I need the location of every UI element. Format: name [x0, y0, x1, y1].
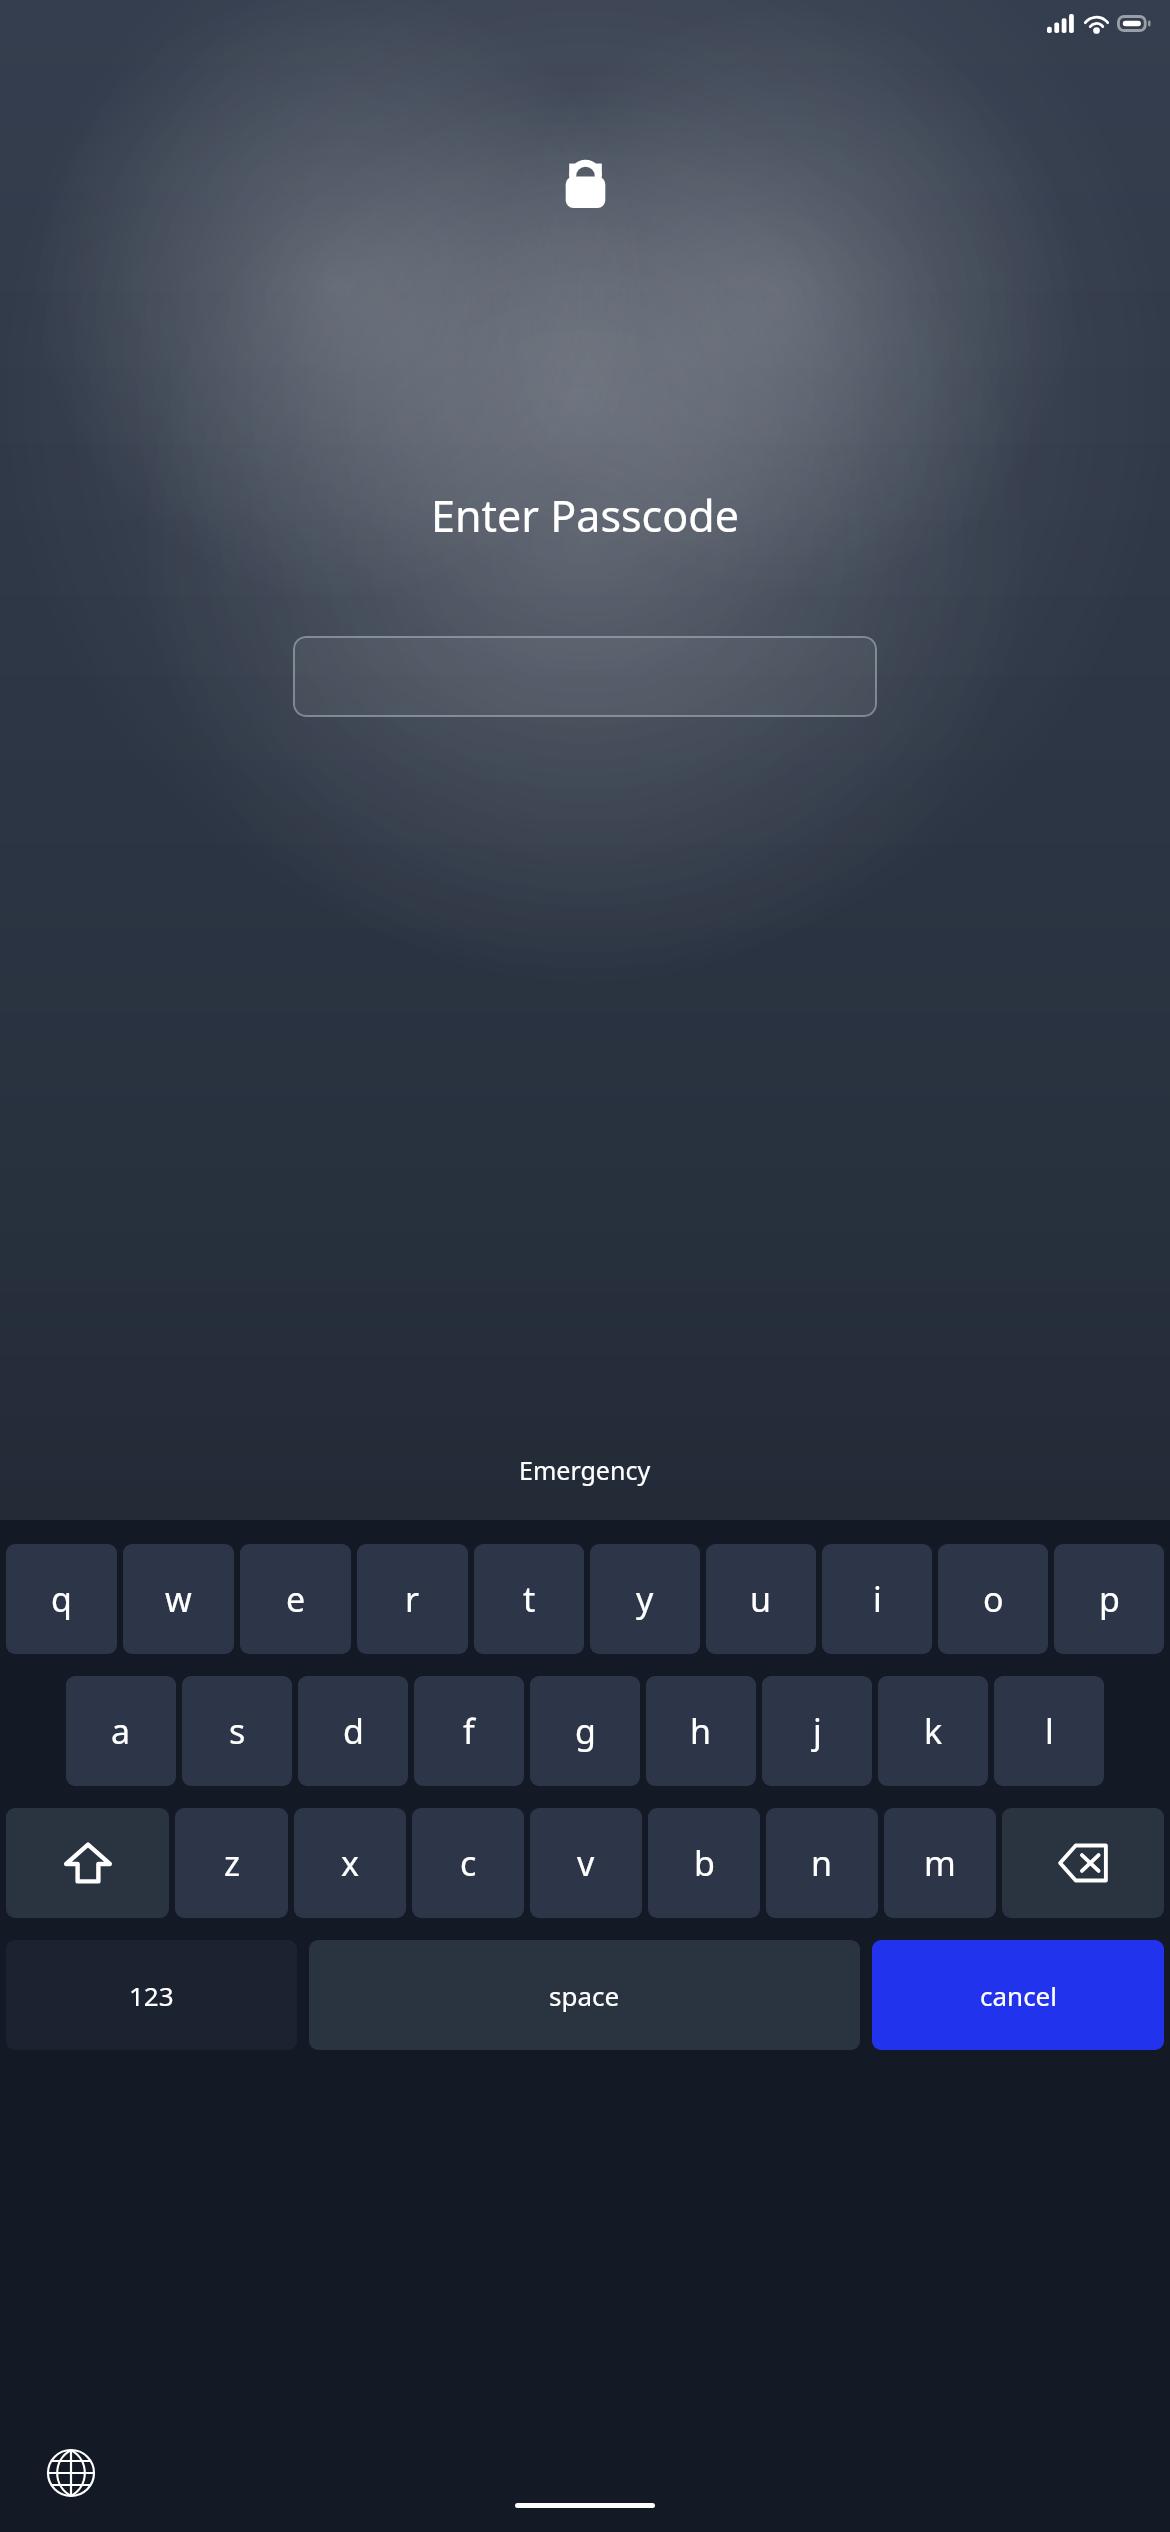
button[interactable]: i: [822, 1544, 932, 1654]
button[interactable]: Shift: [6, 1808, 169, 1918]
staticText: Emergency: [519, 1453, 651, 1487]
staticText: z: [224, 1840, 240, 1886]
staticText: w: [165, 1576, 192, 1622]
button[interactable]: Change keyboard: [40, 2442, 102, 2504]
button[interactable]: s: [182, 1676, 292, 1786]
button[interactable]: z: [175, 1808, 288, 1918]
button[interactable]: o: [938, 1544, 1048, 1654]
staticText: cancel: [980, 1978, 1057, 2013]
button[interactable]: e: [240, 1544, 351, 1654]
staticText: t: [523, 1576, 536, 1622]
staticText: b: [694, 1840, 715, 1886]
button[interactable]: [293, 636, 877, 717]
button[interactable]: g: [530, 1676, 640, 1786]
staticText: g: [575, 1708, 596, 1754]
staticText: l: [1045, 1708, 1054, 1754]
button[interactable]: 123: [6, 1940, 297, 2050]
staticText: s: [229, 1708, 246, 1754]
other: Locked: [563, 153, 608, 208]
staticText: v: [577, 1840, 595, 1886]
button[interactable]: w: [123, 1544, 234, 1654]
button[interactable]: space: [309, 1940, 860, 2050]
staticText: i: [873, 1576, 882, 1622]
button[interactable]: j: [762, 1676, 872, 1786]
staticText: p: [1099, 1576, 1120, 1622]
button[interactable]: c: [412, 1808, 524, 1918]
staticText: x: [341, 1840, 359, 1886]
button[interactable]: b: [648, 1808, 760, 1918]
button[interactable]: m: [884, 1808, 996, 1918]
button[interactable]: n: [766, 1808, 878, 1918]
staticText: r: [405, 1576, 420, 1622]
staticText: d: [343, 1708, 364, 1754]
staticText: j: [813, 1708, 822, 1754]
button[interactable]: d: [298, 1676, 408, 1786]
staticText: k: [924, 1708, 943, 1754]
button[interactable]: u: [706, 1544, 816, 1654]
button[interactable]: cancel: [872, 1940, 1164, 2050]
button[interactable]: f: [414, 1676, 524, 1786]
staticText: space: [549, 1978, 620, 2013]
staticText: o: [983, 1576, 1004, 1622]
staticText: q: [51, 1576, 72, 1622]
staticText: Enter Passcode: [431, 486, 739, 545]
button[interactable]: h: [646, 1676, 756, 1786]
staticText: n: [811, 1840, 833, 1886]
button[interactable]: y: [590, 1544, 700, 1654]
button[interactable]: l: [994, 1676, 1104, 1786]
staticText: a: [111, 1708, 131, 1754]
staticText: y: [636, 1576, 654, 1622]
button[interactable]: r: [357, 1544, 468, 1654]
staticText: h: [690, 1708, 712, 1754]
button[interactable]: q: [6, 1544, 117, 1654]
button[interactable]: p: [1054, 1544, 1164, 1654]
button[interactable]: Emergency: [499, 1444, 671, 1496]
staticText: c: [460, 1840, 477, 1886]
staticText: e: [286, 1576, 306, 1622]
button[interactable]: k: [878, 1676, 988, 1786]
staticText: 123: [129, 1978, 174, 2013]
button[interactable]: v: [530, 1808, 642, 1918]
button[interactable]: t: [474, 1544, 584, 1654]
staticText: m: [924, 1840, 956, 1886]
button[interactable]: x: [294, 1808, 406, 1918]
button[interactable]: Backspace: [1002, 1808, 1164, 1918]
button[interactable]: a: [66, 1676, 176, 1786]
staticText: u: [750, 1576, 772, 1622]
staticText: f: [463, 1708, 475, 1754]
